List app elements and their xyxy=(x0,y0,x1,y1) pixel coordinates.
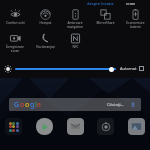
button[interactable]: MirrorShare xyxy=(90,8,120,25)
button[interactable]: Confort ochi xyxy=(0,8,30,25)
other: Voice search xyxy=(130,102,136,108)
button[interactable]: Gallery xyxy=(128,118,145,135)
button[interactable]: Hotspot xyxy=(30,8,60,25)
staticText: o xyxy=(25,100,30,110)
staticText: Nu deranjați xyxy=(36,45,55,49)
button[interactable]: Mail xyxy=(67,118,84,135)
staticText: ecran xyxy=(126,1,136,6)
button[interactable]: Automat xyxy=(120,66,144,71)
staticText: e xyxy=(37,100,42,110)
button[interactable] xyxy=(15,65,116,73)
button[interactable]: Folder xyxy=(5,118,22,135)
staticText: l xyxy=(35,100,37,110)
staticText: Ambroare navigation xyxy=(67,21,83,29)
staticText: G xyxy=(14,100,20,110)
staticText: Căutaţi... xyxy=(107,102,124,107)
other: Automat checkbox xyxy=(139,66,144,71)
staticText: MirrorShare xyxy=(96,21,115,25)
staticText: g xyxy=(30,100,35,110)
button[interactable]: Play Store xyxy=(36,118,53,135)
button[interactable]: Nu deranjați xyxy=(30,32,60,49)
button[interactable]: Camera xyxy=(97,118,114,135)
staticText: Automat xyxy=(120,66,137,71)
button[interactable]: Economisire baterie xyxy=(120,8,150,29)
staticText: Confort ochi xyxy=(6,21,25,25)
staticText: NFC xyxy=(72,45,79,49)
staticText: Înregistrare ecran xyxy=(6,45,24,53)
staticText: Economisire baterie xyxy=(126,21,145,29)
button[interactable]: G xyxy=(9,98,141,111)
staticText: Hotspot xyxy=(39,21,52,25)
staticText: o xyxy=(20,100,25,110)
button[interactable]: NFC xyxy=(60,32,90,49)
staticText: despre locație xyxy=(87,1,114,6)
other: Brightness xyxy=(4,65,12,73)
button[interactable]: Ambroare navigation xyxy=(60,8,90,29)
button[interactable]: Înregistrare ecran xyxy=(0,32,30,53)
